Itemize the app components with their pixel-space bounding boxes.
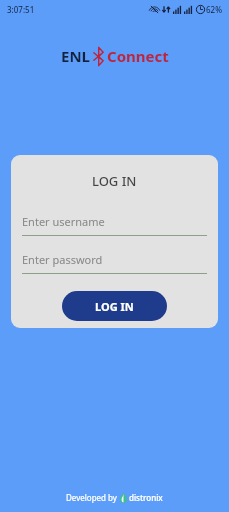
staticText: Enter username	[22, 214, 105, 229]
button[interactable]: Enter password	[22, 249, 207, 274]
other: Bluetooth	[93, 47, 104, 66]
staticText: ENL	[61, 46, 90, 66]
staticText: Connect	[107, 46, 169, 66]
staticText: 3:07:51	[7, 4, 35, 15]
staticText: LOG IN	[92, 172, 137, 190]
other: Distronix logo	[120, 492, 127, 503]
button[interactable]: LOG IN	[62, 291, 167, 321]
staticText: Enter password	[22, 252, 103, 267]
staticText: 62%	[206, 4, 222, 15]
staticText: distronix	[129, 492, 163, 503]
staticText: Developed by	[66, 492, 117, 503]
button[interactable]: Enter username	[22, 211, 207, 236]
staticText: LOG IN	[95, 299, 134, 314]
